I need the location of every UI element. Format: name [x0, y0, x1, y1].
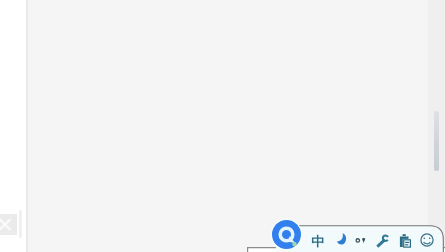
button[interactable]: Emoji: [420, 233, 434, 247]
button[interactable]: Tools: [376, 232, 392, 248]
button[interactable]: QQ: [272, 220, 301, 249]
button[interactable]: Night mode: [333, 230, 350, 247]
button[interactable]: Screenshot: [351, 230, 368, 247]
button[interactable]: Scroll: [434, 111, 439, 171]
button[interactable]: 中: [308, 232, 326, 250]
staticText: 中: [311, 233, 324, 249]
button[interactable]: Close: [0, 214, 17, 235]
button[interactable]: Clipboard: [398, 232, 414, 248]
